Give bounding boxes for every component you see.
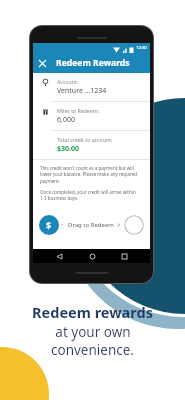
button[interactable]: Close bbox=[33, 54, 51, 72]
staticText: 12:30 bbox=[136, 45, 147, 51]
staticText: at your own bbox=[55, 323, 131, 341]
staticText: Drag to Redeem bbox=[68, 221, 114, 229]
staticText: Account: bbox=[57, 78, 79, 85]
staticText: Redeem Rewards bbox=[56, 57, 130, 69]
staticText: 6,000 bbox=[57, 115, 75, 125]
staticText: $ bbox=[46, 219, 52, 231]
staticText: This credit won't count as a payment but… bbox=[40, 165, 143, 184]
staticText: Redeem rewards bbox=[32, 302, 153, 322]
staticText: Total credit to account: bbox=[57, 136, 113, 143]
staticText: Miles to Redeem: bbox=[57, 107, 99, 114]
staticText: convenience. bbox=[51, 341, 134, 359]
button[interactable]: Recents bbox=[117, 249, 131, 263]
staticText: $30.00 bbox=[57, 144, 79, 154]
staticText: Once completed, your credit will arrive … bbox=[40, 189, 143, 201]
button[interactable]: Back bbox=[52, 249, 66, 263]
staticText: Venture ...1234 bbox=[57, 86, 107, 96]
button[interactable]: Home bbox=[85, 249, 99, 263]
button[interactable]: Drag to Redeem bbox=[33, 211, 150, 239]
